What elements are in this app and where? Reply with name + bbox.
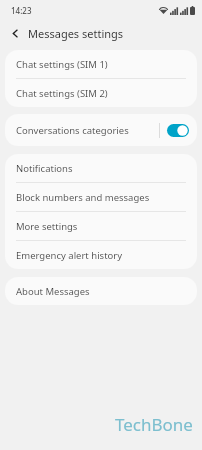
button[interactable]: Chat settings (SIM 2) bbox=[5, 79, 197, 107]
button[interactable]: Back bbox=[6, 24, 24, 42]
staticText: More settings bbox=[16, 220, 78, 233]
staticText: Chat settings (SIM 1) bbox=[16, 58, 108, 71]
staticText: Emergency alert history bbox=[16, 249, 123, 262]
button[interactable]: Conversations categories bbox=[5, 114, 197, 146]
button[interactable]: Conversations categories toggle bbox=[167, 124, 189, 137]
button[interactable]: Notifications bbox=[5, 154, 197, 182]
staticText: About Messages bbox=[16, 285, 90, 298]
staticText: Notifications bbox=[16, 162, 73, 175]
staticText: Block numbers and messages bbox=[16, 191, 150, 204]
button[interactable]: About Messages bbox=[5, 277, 197, 305]
staticText: Conversations categories bbox=[16, 124, 159, 137]
button[interactable]: Emergency alert history bbox=[5, 241, 197, 269]
button[interactable]: Chat settings (SIM 1) bbox=[5, 50, 197, 78]
staticText: Chat settings (SIM 2) bbox=[16, 87, 108, 100]
staticText: 14:23 bbox=[11, 5, 32, 16]
button[interactable]: More settings bbox=[5, 212, 197, 240]
staticText: Messages settings bbox=[28, 26, 124, 41]
button[interactable]: Block numbers and messages bbox=[5, 183, 197, 211]
staticText: TechBone bbox=[115, 413, 193, 436]
